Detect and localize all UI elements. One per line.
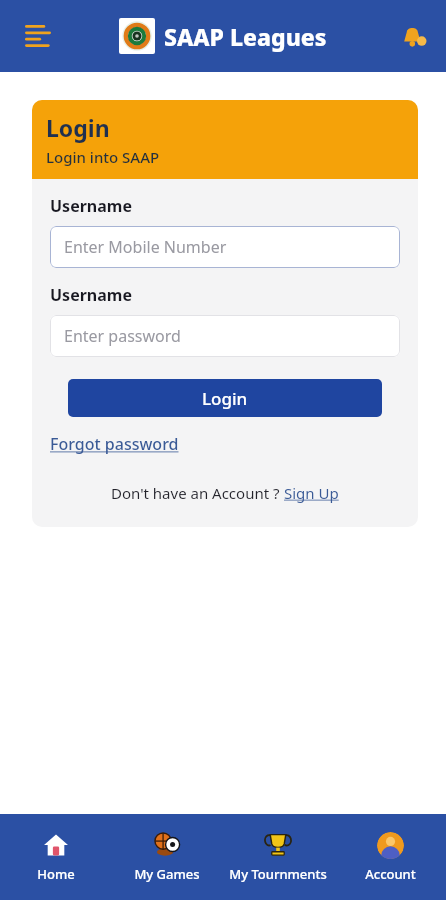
- staticText: Home: [37, 865, 75, 883]
- button[interactable]: Enter password: [50, 315, 400, 357]
- staticText: Login: [46, 112, 110, 143]
- button[interactable]: Forgot password: [50, 433, 179, 455]
- staticText: SAAP Leagues: [164, 21, 327, 52]
- staticText: My Games: [134, 865, 200, 883]
- button[interactable]: Login: [68, 379, 382, 417]
- staticText: Forgot password: [50, 433, 179, 455]
- staticText: Account: [365, 865, 416, 883]
- button[interactable]: Notifications: [392, 14, 436, 58]
- staticText: Sign Up: [284, 483, 339, 503]
- button[interactable]: Home: [0, 821, 111, 893]
- staticText: Enter Mobile Number: [64, 236, 227, 258]
- button[interactable]: Account: [334, 821, 446, 893]
- button[interactable]: Sign Up: [284, 483, 339, 503]
- staticText: Login into SAAP: [46, 147, 160, 167]
- staticText: My Tournments: [229, 865, 327, 883]
- staticText: Don't have an Account ?: [111, 483, 284, 503]
- button[interactable]: My Tournments: [222, 821, 334, 893]
- staticText: Username: [50, 284, 132, 306]
- staticText: Login: [202, 387, 248, 410]
- button[interactable]: Enter Mobile Number: [50, 226, 400, 268]
- button[interactable]: Menu: [16, 14, 60, 58]
- button[interactable]: My Games: [111, 821, 222, 893]
- staticText: Username: [50, 195, 132, 217]
- staticText: Enter password: [64, 325, 181, 347]
